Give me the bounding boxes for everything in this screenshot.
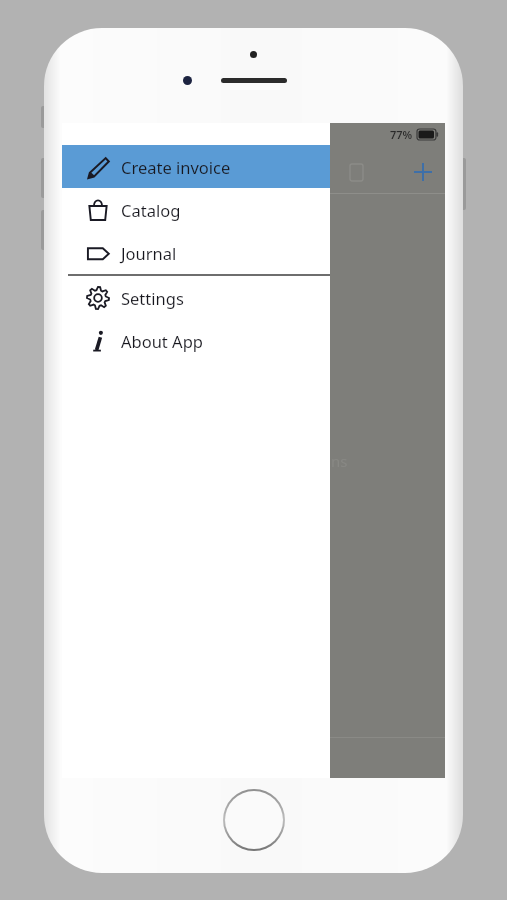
button[interactable]: Home [225, 791, 283, 849]
button[interactable]: Journal [62, 231, 330, 274]
button[interactable]: Catalog [62, 188, 330, 231]
staticText: Create invoice [121, 156, 231, 178]
button[interactable]: About App [62, 319, 330, 362]
button[interactable]: Create invoice [62, 145, 330, 188]
staticText: Settings [121, 287, 184, 309]
staticText: 77% [390, 127, 413, 142]
button[interactable]: Add [405, 154, 441, 190]
staticText: Journal [121, 242, 177, 264]
button[interactable]: Settings [62, 276, 330, 319]
staticText: Catalog [121, 199, 181, 221]
staticText: About App [121, 330, 203, 352]
